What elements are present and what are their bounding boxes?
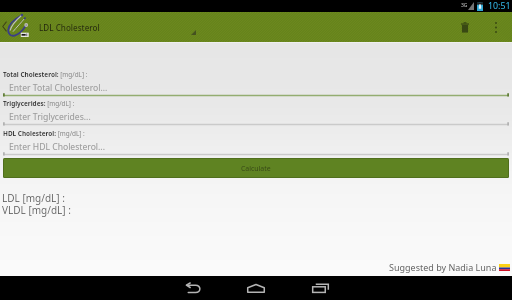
button[interactable]: More options: [480, 12, 512, 42]
staticText: Triglycerides: [mg/dL] :: [3, 99, 75, 108]
staticText: 3G: [461, 2, 468, 9]
button[interactable]: Enter Triglycerides...: [3, 110, 509, 127]
staticText: Enter Triglycerides...: [9, 111, 91, 123]
button[interactable]: Calculate: [3, 158, 509, 178]
button[interactable]: Delete: [449, 12, 480, 42]
button[interactable]: Back: [164, 276, 220, 300]
staticText: Enter Total Cholesterol...: [9, 82, 108, 94]
staticText: Calculate: [241, 164, 271, 173]
staticText: Enter HDL Cholesterol...: [9, 141, 105, 153]
staticText: Suggested by Nadia Luna: [389, 261, 497, 273]
button[interactable]: Home: [228, 276, 284, 300]
staticText: Total Cholesterol: [mg/dL] :: [3, 70, 88, 79]
button[interactable]: Recents: [292, 276, 348, 300]
staticText: 10:51: [488, 0, 511, 12]
button[interactable]: Enter Total Cholesterol...: [3, 81, 509, 98]
staticText: HDL Cholesterol: [mg/dL] :: [3, 129, 85, 138]
button[interactable]: Enter HDL Cholesterol...: [3, 140, 509, 157]
button[interactable]: Navigate up: [0, 12, 38, 42]
staticText: LDL [mg/dL] :: [2, 191, 65, 205]
staticText: LDL Cholesterol: [39, 22, 100, 33]
staticText: VLDL [mg/dL] :: [2, 203, 71, 217]
